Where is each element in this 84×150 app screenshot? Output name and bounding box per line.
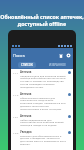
staticText: 1.2.2 <box>13 131 19 134</box>
staticText: 1.2.1 <box>13 115 19 118</box>
staticText: СПИСОК <box>21 63 33 67</box>
staticText: доступный offline <box>0 20 84 27</box>
button[interactable]: 1.2.1 <box>12 114 72 130</box>
button[interactable]: Add to favourites <box>68 93 71 96</box>
button[interactable]: Поиск <box>13 53 25 58</box>
staticText: ИЗБРАННОЕ <box>49 63 66 67</box>
button[interactable]: Settings <box>65 52 72 59</box>
button[interactable]: 1.1.1 <box>12 70 72 92</box>
button[interactable]: СПИСОК <box>11 61 42 69</box>
staticText: Обновлённый список аптечек, <box>0 13 84 20</box>
staticText: Аптечка <box>20 70 32 74</box>
staticText: Комплект для образовательных и детских у… <box>20 134 66 146</box>
staticText: 1.1.2 <box>13 93 19 96</box>
staticText: Обязательный комплект для транспортных с… <box>20 96 66 111</box>
button[interactable]: Add to favourites <box>68 71 71 74</box>
button[interactable]: ИЗБРАННОЕ <box>42 61 73 69</box>
button[interactable]: Add to favourites <box>68 115 71 118</box>
staticText: Укладка <box>20 130 32 134</box>
button[interactable]: 1.2.2 <box>12 130 72 149</box>
button[interactable]: Delete <box>57 52 64 59</box>
button[interactable]: 1.1.2 <box>12 92 72 114</box>
staticText: 1.1.1 <box>13 71 19 74</box>
staticText: Аптечка <box>20 92 32 96</box>
staticText: Набор медикаментов для самостоятельного … <box>20 118 66 127</box>
staticText: Аптечка <box>20 114 32 118</box>
button[interactable]: Add to favourites <box>68 131 71 134</box>
staticText: Поиск <box>13 53 25 58</box>
staticText: Предназначена для оказания первой помощи… <box>20 74 66 89</box>
